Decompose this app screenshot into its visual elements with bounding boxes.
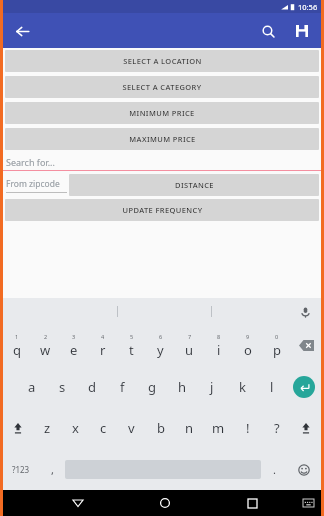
button[interactable]: Back	[63, 490, 93, 516]
button[interactable]: k	[227, 366, 257, 407]
staticText: DISTANCE	[175, 180, 214, 190]
button[interactable]: l	[257, 366, 287, 407]
button[interactable]: f	[107, 366, 137, 407]
button[interactable]: 1	[3, 325, 31, 366]
button[interactable]: ?123	[3, 449, 39, 490]
button[interactable]: From zipcode	[3, 174, 69, 196]
button[interactable]: g	[137, 366, 167, 407]
staticText: s	[59, 378, 66, 396]
staticText: 8	[217, 333, 221, 340]
button[interactable]: m	[204, 407, 233, 449]
button[interactable]: Search	[255, 18, 281, 44]
staticText: UPDATE FREQUENCY	[122, 205, 203, 215]
button[interactable]: j	[197, 366, 227, 407]
button[interactable]: Emoji	[287, 449, 321, 490]
button[interactable]: Shift	[291, 407, 321, 449]
staticText: n	[185, 419, 194, 437]
staticText: w	[40, 341, 51, 359]
button[interactable]: x	[61, 407, 89, 449]
staticText: g	[148, 378, 156, 396]
staticText: SELECT A CATEGORY	[122, 82, 202, 92]
staticText: 2	[44, 333, 48, 340]
button[interactable]: 3	[59, 325, 88, 366]
button[interactable]: 9	[233, 325, 262, 366]
button[interactable]: ?	[262, 407, 291, 449]
button[interactable]: Search for...	[3, 153, 321, 171]
button[interactable]: MAXIMUM PRICE	[5, 128, 319, 150]
button[interactable]: Voice input	[296, 303, 314, 321]
button[interactable]: n	[175, 407, 204, 449]
staticText: x	[72, 419, 79, 437]
button[interactable]: c	[89, 407, 117, 449]
button[interactable]: ,	[39, 449, 65, 490]
staticText: k	[239, 378, 246, 396]
staticText: ,	[51, 462, 54, 477]
button[interactable]: SELECT A LOCATION	[5, 50, 319, 72]
staticText: 1	[15, 333, 19, 340]
button[interactable]: 7	[175, 325, 204, 366]
staticText: z	[44, 419, 51, 437]
button[interactable]: SELECT A CATEGORY	[5, 76, 319, 98]
button[interactable]: MINIMUM PRICE	[5, 102, 319, 124]
button[interactable]: !	[233, 407, 262, 449]
staticText: i	[217, 341, 221, 359]
button[interactable]: h	[167, 366, 197, 407]
staticText: d	[88, 378, 96, 396]
staticText: e	[70, 341, 78, 359]
button[interactable]: d	[77, 366, 107, 407]
staticText: MAXIMUM PRICE	[129, 134, 196, 144]
button[interactable]: 8	[204, 325, 233, 366]
staticText: MINIMUM PRICE	[129, 108, 195, 118]
staticText: o	[244, 341, 252, 359]
button[interactable]: 0	[262, 325, 291, 366]
button[interactable]: z	[33, 407, 61, 449]
button[interactable]: 2	[31, 325, 59, 366]
staticText: a	[28, 378, 36, 396]
staticText: q	[13, 341, 21, 359]
button[interactable]: Shift	[3, 407, 33, 449]
button[interactable]: b	[146, 407, 175, 449]
button[interactable]: Save	[289, 18, 315, 44]
button[interactable]: Recents	[237, 490, 267, 516]
staticText: f	[120, 378, 125, 396]
button[interactable]: Back	[9, 18, 35, 44]
button[interactable]: .	[261, 449, 287, 490]
button[interactable]: UPDATE FREQUENCY	[5, 199, 319, 221]
button[interactable]: 6	[146, 325, 175, 366]
staticText: v	[128, 419, 135, 437]
button[interactable]: Backspace	[291, 325, 321, 366]
staticText: From zipcode	[6, 178, 60, 190]
button[interactable]: Switch keyboard	[295, 490, 321, 516]
staticText: 9	[246, 333, 250, 340]
button[interactable]: s	[47, 366, 77, 407]
staticText: 6	[159, 333, 163, 340]
button[interactable]: v	[117, 407, 146, 449]
staticText: !	[246, 419, 250, 437]
button[interactable]: a	[17, 366, 47, 407]
staticText: ?	[274, 419, 280, 437]
staticText: l	[270, 378, 274, 396]
staticText: 7	[188, 333, 192, 340]
staticText: r	[100, 341, 106, 359]
staticText: t	[129, 341, 134, 359]
staticText: .	[273, 462, 276, 477]
button[interactable]: 4	[88, 325, 117, 366]
staticText: 3	[72, 333, 76, 340]
staticText: 4	[101, 333, 105, 340]
staticText: Search for...	[6, 156, 55, 168]
staticText: b	[157, 419, 165, 437]
staticText: 5	[130, 333, 134, 340]
staticText: ?123	[12, 464, 30, 475]
button[interactable]: Enter	[287, 366, 321, 407]
button[interactable]: Home	[150, 490, 180, 516]
button[interactable]: DISTANCE	[69, 174, 319, 196]
staticText: y	[157, 341, 164, 359]
button[interactable]: 5	[117, 325, 146, 366]
staticText: 0	[275, 333, 279, 340]
staticText: h	[178, 378, 187, 396]
staticText: p	[273, 341, 281, 359]
staticText: SELECT A LOCATION	[123, 56, 202, 66]
staticText: j	[210, 378, 214, 396]
staticText: u	[185, 341, 194, 359]
